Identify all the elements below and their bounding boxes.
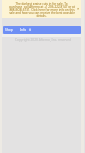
staticText: Shop <box>5 28 13 32</box>
staticText: × <box>77 6 80 11</box>
button[interactable]: Shop <box>3 26 81 34</box>
staticText: it <box>29 28 31 32</box>
button[interactable]: Close banner <box>77 6 80 11</box>
button[interactable]: Info <box>20 28 27 32</box>
staticText: purchase, call Afterno at +1 206-222-814… <box>9 5 75 8</box>
staticText: The darkest praise cuts in for sale. To <box>15 2 68 5</box>
staticText: sale and how you can receive the best po… <box>9 11 75 14</box>
staticText: Copyright 2020 Afterno, Inc. reserved <box>15 38 71 42</box>
button[interactable]: Shop <box>5 28 13 32</box>
staticText: 888-BOB-6731. Click here for more info o… <box>9 8 75 11</box>
button[interactable]: it <box>29 28 31 32</box>
staticText: Info <box>20 28 27 32</box>
staticText: details. <box>36 14 47 17</box>
button[interactable]: The darkest praise cuts in for sale. To <box>2 0 81 18</box>
